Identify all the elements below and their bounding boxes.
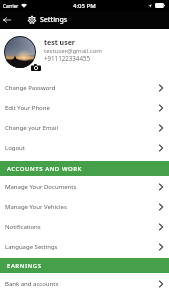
- staticText: Bank and accounts: [5, 280, 59, 288]
- button[interactable]: Language Settings: [0, 237, 169, 257]
- button[interactable]: Change profile photo: [31, 64, 41, 71]
- button[interactable]: Logout: [0, 138, 169, 158]
- staticText: 4:05 PM: [73, 2, 96, 10]
- button[interactable]: Bank and accounts: [0, 274, 169, 294]
- staticText: Logout: [5, 144, 25, 152]
- staticText: Change Password: [5, 84, 56, 92]
- button[interactable]: Change your Email: [0, 118, 169, 138]
- staticText: test user: [44, 38, 75, 48]
- staticText: Settings: [40, 15, 68, 25]
- staticText: ACCOUNTS AND WORK: [7, 165, 82, 173]
- staticText: +911122334455: [44, 54, 91, 62]
- button[interactable]: Edit Your Phone: [0, 98, 169, 118]
- staticText: Edit Your Phone: [5, 104, 50, 112]
- button[interactable]: Notifications: [0, 217, 169, 237]
- staticText: Language Settings: [5, 243, 58, 251]
- staticText: EARNINGS: [7, 262, 42, 270]
- button[interactable]: Manage Your Vehicles: [0, 197, 169, 217]
- staticText: testuser@gmail.com: [44, 47, 102, 55]
- staticText: Notifications: [5, 223, 41, 231]
- staticText: Manage Your Documents: [5, 183, 77, 191]
- staticText: Change your Email: [5, 124, 59, 132]
- button[interactable]: Back: [0, 11, 14, 29]
- button[interactable]: Manage Your Documents: [0, 177, 169, 197]
- staticText: Manage Your Vehicles: [5, 203, 67, 211]
- button[interactable]: Change Password: [0, 78, 169, 98]
- staticText: Carrier: [3, 3, 19, 9]
- button[interactable]: Profile photo: [4, 36, 36, 68]
